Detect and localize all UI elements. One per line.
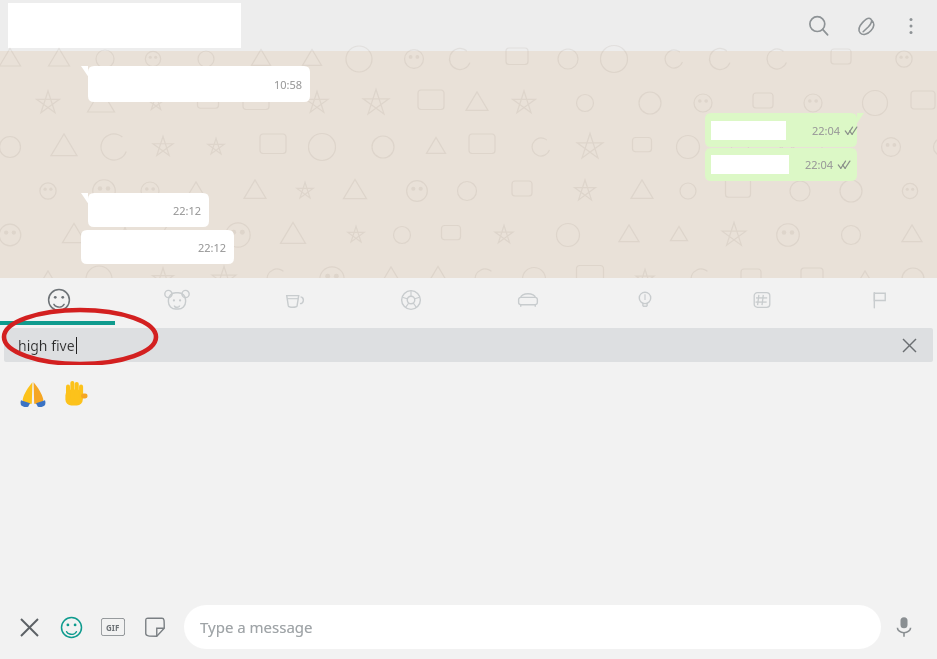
button[interactable]: 10:58 [81,66,310,102]
button[interactable]: 22:12 [81,230,234,264]
button[interactable]: GIF [94,608,132,646]
button[interactable]: Stickers [136,608,174,646]
button[interactable]: 22:04 [705,113,864,147]
staticText: high five [18,336,75,355]
button[interactable]: Search [795,2,843,50]
button[interactable]: Emoji [52,608,90,646]
staticText: 22:12 [198,240,227,255]
button[interactable]: 22:12 [81,193,209,227]
staticText: GIF [106,622,120,633]
button[interactable]: Type a message [184,605,881,649]
staticText: 22:04 [805,157,834,172]
staticText: Type a message [200,617,313,637]
button[interactable]: Close emoji panel [10,608,48,646]
button[interactable]: Voice message [881,604,927,650]
button[interactable]: Raised hand emoji [54,372,96,414]
button[interactable]: Flags [820,278,937,325]
button[interactable]: Travel [469,278,586,325]
button[interactable]: Animals [118,278,235,325]
button[interactable]: Food [235,278,352,325]
button[interactable]: Objects [586,278,703,325]
button[interactable]: Symbols [703,278,820,325]
button[interactable]: Folded hands emoji [12,372,54,414]
button[interactable]: Activities [352,278,469,325]
staticText: 10:58 [274,77,303,92]
staticText: 22:04 [812,123,841,138]
button[interactable]: Attach [843,2,891,50]
button[interactable]: Smileys [0,278,118,325]
button[interactable]: More options [891,6,931,46]
button[interactable]: high five [4,328,933,362]
button[interactable]: 22:04 [705,148,857,181]
staticText: 22:12 [173,203,202,218]
button[interactable]: Clear search [898,334,920,356]
